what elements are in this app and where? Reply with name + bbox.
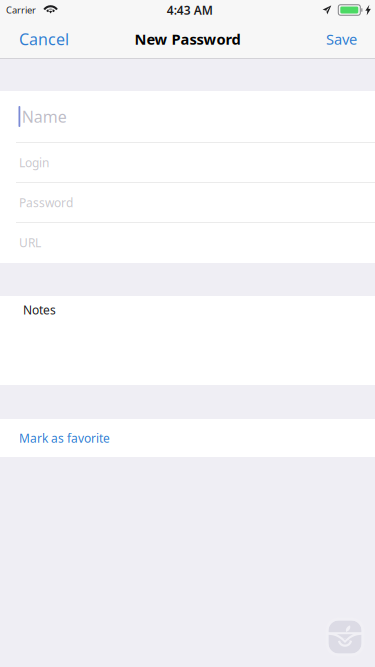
staticText: Notes (23, 302, 56, 318)
staticText: Cancel (19, 28, 69, 50)
button[interactable]: Cancel (11, 20, 77, 58)
staticText: Login (19, 154, 49, 170)
staticText: Name (22, 106, 67, 127)
staticText: Save (326, 29, 357, 49)
staticText: New Password (134, 29, 240, 49)
button[interactable]: Name (0, 91, 375, 143)
staticText: Password (19, 194, 73, 210)
button[interactable]: Password (0, 183, 375, 223)
staticText: URL (19, 234, 41, 250)
button[interactable]: Login (0, 143, 375, 183)
button[interactable]: Save (318, 20, 365, 58)
staticText: Mark as favorite (19, 430, 110, 446)
staticText: 4:43 AM (167, 2, 213, 18)
button[interactable]: Mark as favorite (0, 419, 375, 457)
staticText: Carrier (6, 4, 36, 16)
